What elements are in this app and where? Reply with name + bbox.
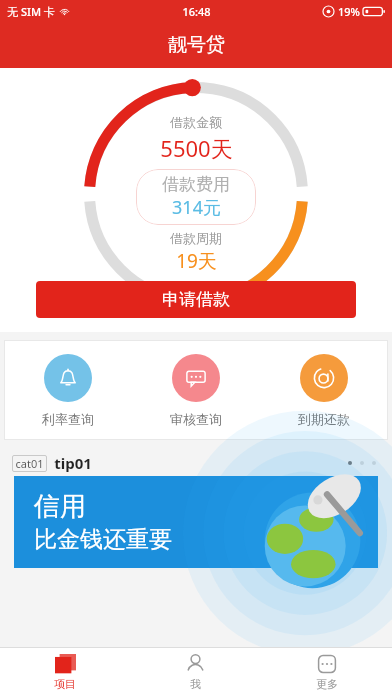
- button[interactable]: 更多: [261, 648, 392, 696]
- staticText: 19%: [338, 4, 360, 19]
- button[interactable]: 到期还款: [260, 340, 388, 440]
- staticText: 无 SIM 卡: [7, 4, 55, 19]
- staticText: 靓号贷: [168, 33, 225, 57]
- button[interactable]: 我: [130, 648, 261, 696]
- button[interactable]: 利率查询: [4, 340, 132, 440]
- staticText: tip01: [54, 453, 92, 473]
- button[interactable]: cat01: [0, 450, 392, 476]
- staticText: cat01: [15, 456, 44, 471]
- staticText: 到期还款: [298, 411, 350, 427]
- staticText: 314元: [172, 195, 221, 220]
- other: 项目: [55, 654, 76, 675]
- other: 更多: [317, 654, 337, 674]
- staticText: 16:48: [182, 4, 211, 19]
- staticText: 5500天: [160, 133, 233, 163]
- staticText: 我: [190, 677, 201, 691]
- staticText: 项目: [54, 677, 76, 691]
- button[interactable]: 申请借款: [36, 281, 356, 318]
- button[interactable]: 项目: [0, 648, 130, 696]
- staticText: 借款费用: [162, 174, 230, 195]
- staticText: 比金钱还重要: [34, 525, 172, 554]
- button[interactable]: 借款费用: [136, 169, 256, 225]
- staticText: 利率查询: [42, 411, 94, 427]
- staticText: 信用: [34, 490, 86, 523]
- staticText: 审核查询: [170, 411, 222, 427]
- staticText: 更多: [316, 677, 338, 691]
- staticText: 借款金额: [170, 114, 222, 130]
- staticText: 19天: [176, 248, 217, 274]
- button[interactable]: 信用: [14, 476, 378, 568]
- staticText: 申请借款: [162, 289, 230, 310]
- other: 我: [185, 654, 206, 675]
- button[interactable]: 审核查询: [132, 340, 260, 440]
- staticText: 借款周期: [170, 230, 222, 246]
